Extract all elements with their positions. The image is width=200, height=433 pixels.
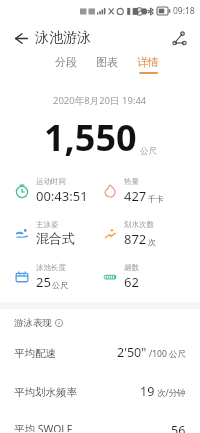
staticText: 1,550 [44,113,137,162]
staticText: 千卡 [148,194,164,204]
button[interactable]: 平均 SWOLF [14,422,186,433]
staticText: 图表 [96,55,118,69]
button[interactable]: 泳池长度 [14,263,102,291]
staticText: 56 [171,422,186,433]
button[interactable]: 趟数 [102,263,190,291]
staticText: 游泳表现 [14,317,52,329]
staticText: 427 [124,187,147,205]
staticText: 公尺 [52,280,68,290]
staticText: 00:43:51 [36,187,88,205]
staticText: 详情 [137,55,159,69]
staticText: 公尺 [140,146,157,157]
staticText: 62 [124,273,139,291]
staticText: 2'50" [117,344,147,361]
staticText: 热量 [124,177,139,186]
button[interactable]: 游泳表现 [14,317,63,329]
staticText: 2020年8月20日 19:44 [53,94,147,107]
staticText: 次/分钟 [157,387,186,399]
button[interactable]: 热量 [102,177,190,205]
button[interactable]: 划水次数 [102,220,190,248]
button[interactable]: 运动时间 [14,177,102,205]
button[interactable]: Back [8,26,32,50]
staticText: 主泳姿 [36,220,59,229]
staticText: 趟数 [124,263,139,272]
button[interactable]: 图表 [93,53,121,76]
staticText: 平均配速 [14,347,56,360]
staticText: 混合式 [36,230,75,246]
staticText: 泳池游泳 [35,29,91,47]
button[interactable]: 分段 [52,53,80,76]
staticText: 划水次数 [124,220,154,229]
staticText: 平均划水频率 [14,386,77,399]
button[interactable]: Share [166,25,192,51]
staticText: 分段 [55,55,77,69]
staticText: 泳池长度 [36,263,66,272]
staticText: 09:18 [173,5,195,17]
button[interactable]: 主泳姿 [14,220,102,246]
staticText: 19 [140,383,155,400]
staticText: /100 公尺 [149,348,186,360]
staticText: 运动时间 [36,177,66,186]
button[interactable]: 平均配速 [14,344,186,361]
staticText: 25 [36,273,51,291]
button[interactable]: 详情 [134,53,162,76]
staticText: 次 [148,237,156,247]
button[interactable]: 平均划水频率 [14,383,186,400]
staticText: 平均 SWOLF [14,422,73,432]
staticText: 872 [124,230,147,248]
